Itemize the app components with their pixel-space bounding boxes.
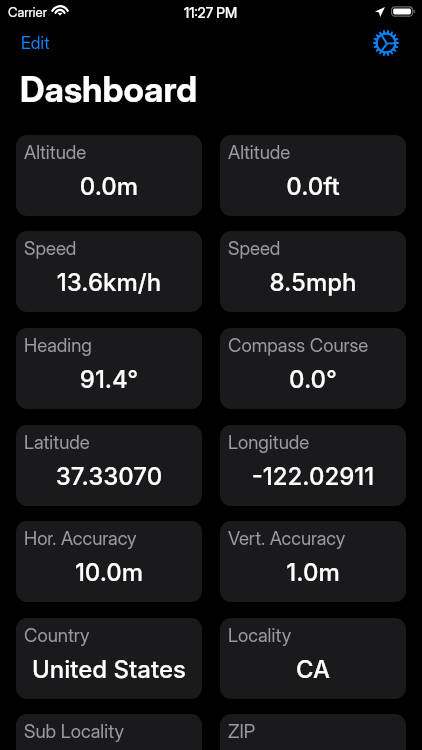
button[interactable]: Speed — [16, 231, 202, 312]
staticText: Altitude — [24, 141, 87, 164]
button[interactable]: Settings — [373, 30, 399, 56]
button[interactable]: Edit — [11, 28, 60, 59]
button[interactable]: Heading — [16, 328, 202, 409]
button[interactable]: Longitude — [220, 425, 406, 506]
staticText: United States — [16, 655, 202, 684]
staticText: Edit — [21, 33, 50, 54]
staticText: 0.0° — [220, 365, 406, 394]
staticText: Country — [24, 624, 90, 647]
staticText: Dashboard — [20, 68, 198, 110]
staticText: 0.0m — [16, 172, 202, 201]
staticText: Altitude — [228, 141, 291, 164]
staticText: -122.02911 — [220, 462, 406, 491]
staticText: Latitude — [24, 431, 90, 454]
staticText: 13.6km/h — [16, 268, 202, 297]
button[interactable]: Vert. Accuracy — [220, 521, 406, 602]
staticText: 11:27 PM — [184, 4, 238, 21]
button[interactable]: Hor. Accuracy — [16, 521, 202, 602]
staticText: Longitude — [228, 431, 310, 454]
staticText: 1.0m — [220, 558, 406, 587]
staticText: 10.0m — [16, 558, 202, 587]
staticText: 0.0ft — [220, 172, 406, 201]
staticText: ZIP — [228, 720, 256, 743]
staticText: Locality — [228, 624, 292, 647]
button[interactable]: Altitude — [16, 135, 202, 216]
staticText: Sub Locality — [24, 720, 125, 743]
button[interactable]: Altitude — [220, 135, 406, 216]
button[interactable]: Compass Course — [220, 328, 406, 409]
staticText: Heading — [24, 334, 92, 357]
button[interactable]: ZIP — [220, 714, 406, 750]
staticText: 8.5mph — [220, 268, 406, 297]
button[interactable]: Speed — [220, 231, 406, 312]
staticText: 37.33070 — [16, 462, 202, 491]
button[interactable]: Locality — [220, 618, 406, 699]
staticText: Carrier — [8, 4, 47, 20]
staticText: Hor. Accuracy — [24, 527, 137, 550]
staticText: Speed — [228, 237, 281, 260]
button[interactable]: Country — [16, 618, 202, 699]
staticText: CA — [220, 655, 406, 684]
button[interactable]: Latitude — [16, 425, 202, 506]
staticText: Compass Course — [228, 334, 369, 357]
staticText: 91.4° — [16, 365, 202, 394]
staticText: Speed — [24, 237, 77, 260]
button[interactable]: Sub Locality — [16, 714, 202, 750]
staticText: Vert. Accuracy — [228, 527, 346, 550]
